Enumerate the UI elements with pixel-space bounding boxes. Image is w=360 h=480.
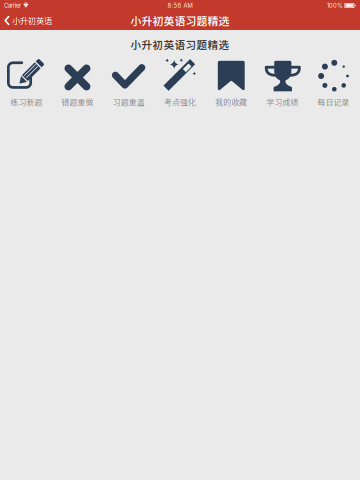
button[interactable]: 我的收藏: [206, 59, 257, 110]
staticText: 练习新题: [10, 96, 42, 108]
button[interactable]: 考点强化: [154, 59, 206, 110]
staticText: 100%: [327, 2, 343, 9]
staticText: 考点强化: [164, 96, 196, 108]
staticText: 学习成绩: [266, 96, 298, 108]
button[interactable]: 每日记录: [308, 59, 359, 110]
staticText: 小升初英语习题精选: [130, 13, 229, 28]
button[interactable]: 学习成绩: [257, 59, 308, 110]
staticText: 小升初英语习题精选: [130, 37, 229, 52]
staticText: 错题重做: [62, 96, 94, 108]
button[interactable]: 习题重温: [103, 59, 154, 110]
staticText: 8:56 AM: [167, 2, 192, 9]
staticText: 我的收藏: [215, 96, 247, 108]
button[interactable]: 错题重做: [52, 59, 103, 110]
button[interactable]: 小升初英语: [0, 11, 56, 30]
staticText: 小升初英语: [12, 14, 52, 26]
button[interactable]: 练习新题: [1, 59, 52, 110]
staticText: 每日记录: [318, 96, 350, 108]
staticText: 习题重温: [113, 96, 145, 108]
staticText: Carrier: [4, 2, 21, 9]
